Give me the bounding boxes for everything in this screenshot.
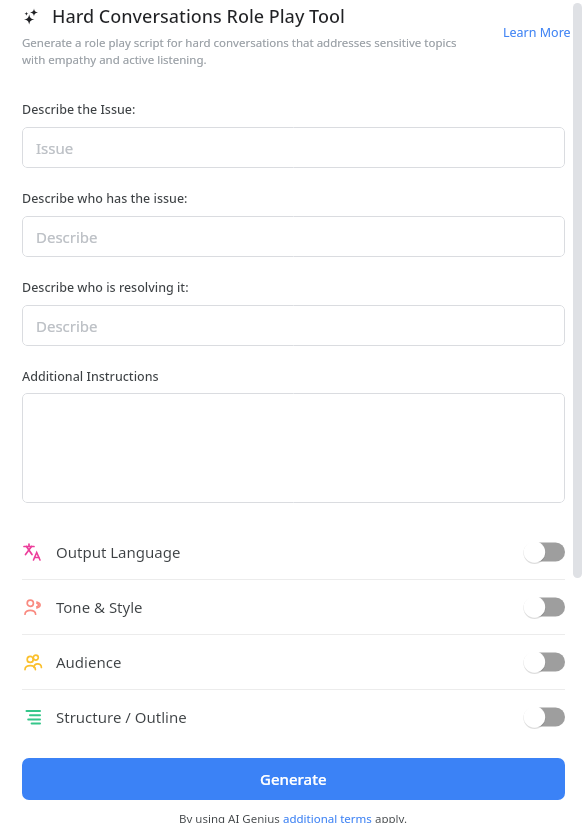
- staticText: Describe who is resolving it:: [22, 279, 189, 296]
- button[interactable]: additional terms: [283, 811, 372, 823]
- staticText: Describe who has the issue:: [22, 190, 188, 207]
- staticText: Tone & Style: [56, 597, 143, 617]
- button[interactable]: Output Language: [0, 525, 587, 579]
- button[interactable]: Toggle: [523, 596, 565, 618]
- button[interactable]: Audience: [0, 635, 587, 689]
- button[interactable]: Generate: [22, 758, 565, 800]
- staticText: Learn More: [503, 24, 571, 41]
- staticText: Hard Conversations Role Play Tool: [52, 4, 345, 29]
- staticText: Additional Instructions: [22, 368, 159, 385]
- staticText: Issue: [36, 138, 74, 158]
- button[interactable]: Describe: [22, 305, 565, 346]
- button[interactable]: [22, 393, 565, 503]
- staticText: apply.: [372, 811, 408, 823]
- button[interactable]: Tone & Style: [0, 580, 587, 634]
- staticText: Describe the Issue:: [22, 101, 136, 118]
- staticText: Audience: [56, 652, 122, 672]
- staticText: Generate: [260, 769, 327, 789]
- button[interactable]: Issue: [22, 127, 565, 168]
- staticText: additional terms: [283, 811, 372, 823]
- staticText: Describe: [36, 316, 98, 336]
- staticText: Generate a role play script for hard con…: [22, 35, 477, 67]
- staticText: Structure / Outline: [56, 707, 187, 727]
- button[interactable]: Structure / Outline: [0, 690, 587, 744]
- button[interactable]: Toggle: [523, 651, 565, 673]
- button[interactable]: Toggle: [523, 706, 565, 728]
- staticText: By using AI Genius: [179, 811, 283, 823]
- button[interactable]: Learn More: [503, 4, 571, 41]
- staticText: Output Language: [56, 542, 181, 562]
- button[interactable]: Toggle: [523, 541, 565, 563]
- button[interactable]: Describe: [22, 216, 565, 257]
- staticText: Describe: [36, 227, 98, 247]
